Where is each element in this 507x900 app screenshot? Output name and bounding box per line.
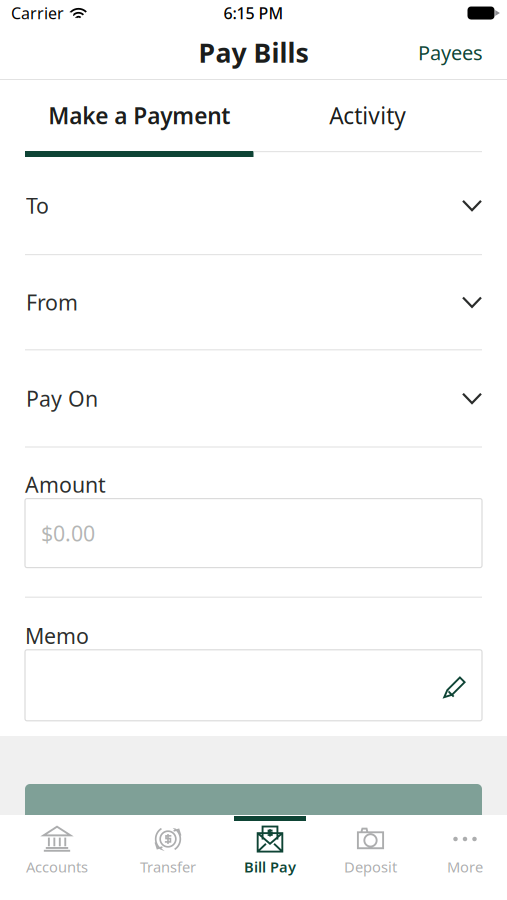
staticText: Payees [418,39,483,66]
staticText: Accounts [26,857,88,876]
staticText: More [447,857,483,876]
button[interactable]: More [447,815,483,900]
button[interactable]: To [0,157,507,254]
staticText: Deposit [344,857,397,876]
staticText: Transfer [140,857,196,876]
button[interactable]: Activity [253,80,482,157]
staticText: To [26,191,49,220]
button[interactable]: Deposit [344,815,397,900]
staticText: $0.00 [41,519,95,547]
staticText: Pay Bills [198,35,308,70]
staticText: Pay On [26,384,98,412]
staticText: Amount [25,470,106,499]
button[interactable]: Payees [408,31,493,74]
button[interactable]: Make a Payment [25,80,253,157]
button[interactable]: Bill Pay [246,815,294,900]
staticText: Make a Payment [48,100,230,130]
button[interactable]: $0.00 [25,499,482,568]
staticText: Continue [205,810,301,838]
staticText: Carrier [11,2,64,24]
button[interactable] [0,784,507,842]
staticText: From [26,288,78,316]
staticText: Bill Pay [244,857,296,876]
button[interactable] [25,650,482,721]
staticText: Activity [329,100,406,130]
button[interactable]: From [0,255,507,349]
button[interactable]: Pay On [0,350,507,446]
button[interactable]: Accounts [24,815,90,900]
button[interactable]: Transfer [140,815,196,900]
staticText: 6:15 PM [223,2,283,24]
staticText: Memo [25,621,89,650]
